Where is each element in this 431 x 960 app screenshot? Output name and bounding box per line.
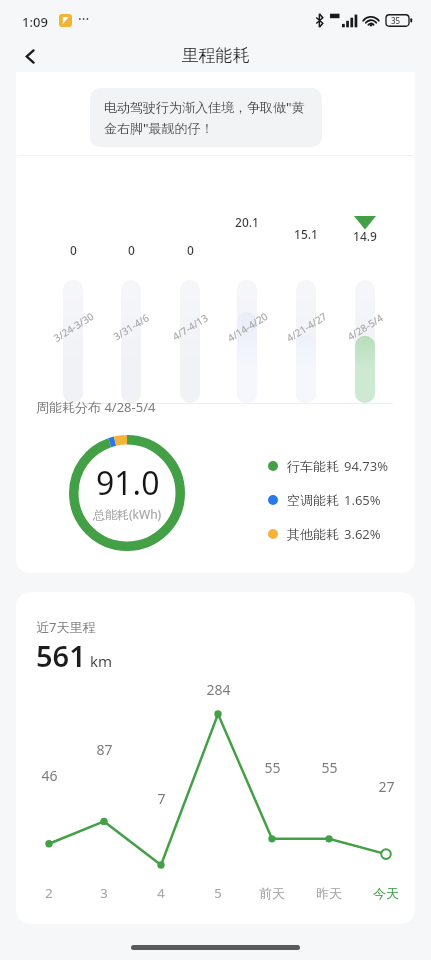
staticText: 4/7-4/13 xyxy=(169,310,211,344)
button[interactable]: 空调能耗 xyxy=(268,491,381,509)
staticText: 3 xyxy=(100,884,108,902)
staticText: 里程能耗 xyxy=(0,45,431,66)
staticText: 46 xyxy=(41,766,58,785)
staticText: 行车能耗 xyxy=(287,458,339,474)
staticText: 近7天里程 xyxy=(36,618,96,636)
staticText: ··· xyxy=(78,9,90,28)
staticText: 总能耗(kWh) xyxy=(93,506,162,522)
staticText: 284 xyxy=(206,680,231,699)
staticText: 0 xyxy=(128,242,135,258)
staticText: 2 xyxy=(45,884,53,902)
staticText: 4/14-4/20 xyxy=(225,309,270,345)
staticText: 4/28-5/4 xyxy=(344,310,386,344)
staticText: 今天 xyxy=(373,885,399,901)
staticText: 电动驾驶行为渐入佳境，争取做"黄金右脚"最靓的仔！ xyxy=(104,98,308,137)
staticText: 14.9 xyxy=(353,228,377,244)
staticText: 1.65% xyxy=(344,491,381,509)
staticText: 55 xyxy=(321,758,338,777)
button[interactable]: 前天 xyxy=(246,880,298,906)
button[interactable]: 昨天 xyxy=(303,880,355,906)
button[interactable]: 4 xyxy=(135,880,187,906)
staticText: 3.62% xyxy=(344,525,381,543)
staticText: 20.1 xyxy=(235,214,259,230)
staticText: 55 xyxy=(264,758,281,777)
staticText: km xyxy=(90,651,113,671)
button[interactable]: 3 xyxy=(78,880,130,906)
button[interactable]: 2 xyxy=(23,880,75,906)
button[interactable]: 5 xyxy=(192,880,244,906)
staticText: 其他能耗 xyxy=(287,526,339,542)
staticText: 3/31-4/6 xyxy=(110,310,152,344)
staticText: 0 xyxy=(70,242,77,258)
button[interactable]: 返回 xyxy=(8,40,52,72)
staticText: 4 xyxy=(157,884,165,902)
staticText: 7 xyxy=(157,789,166,808)
button[interactable]: 今天 xyxy=(360,880,412,906)
staticText: 91.0 xyxy=(96,461,160,505)
staticText: 3/24-3/30 xyxy=(51,309,96,345)
button[interactable]: 其他能耗 xyxy=(268,525,381,543)
staticText: 15.1 xyxy=(294,226,318,242)
staticText: 前天 xyxy=(259,885,285,901)
staticText: 561 xyxy=(36,636,86,675)
staticText: 昨天 xyxy=(316,885,342,901)
staticText: 94.73% xyxy=(344,457,389,475)
staticText: 周能耗分布 4/28-5/4 xyxy=(36,398,156,416)
staticText: 1:09 xyxy=(22,13,48,31)
staticText: 0 xyxy=(187,242,194,258)
staticText: 87 xyxy=(96,740,113,759)
staticText: 27 xyxy=(378,777,395,796)
staticText: 35 xyxy=(391,15,401,26)
button[interactable]: 行车能耗 xyxy=(268,457,389,475)
staticText: 4/21-4/27 xyxy=(284,309,329,345)
staticText: 空调能耗 xyxy=(287,492,339,508)
staticText: 5 xyxy=(214,884,222,902)
